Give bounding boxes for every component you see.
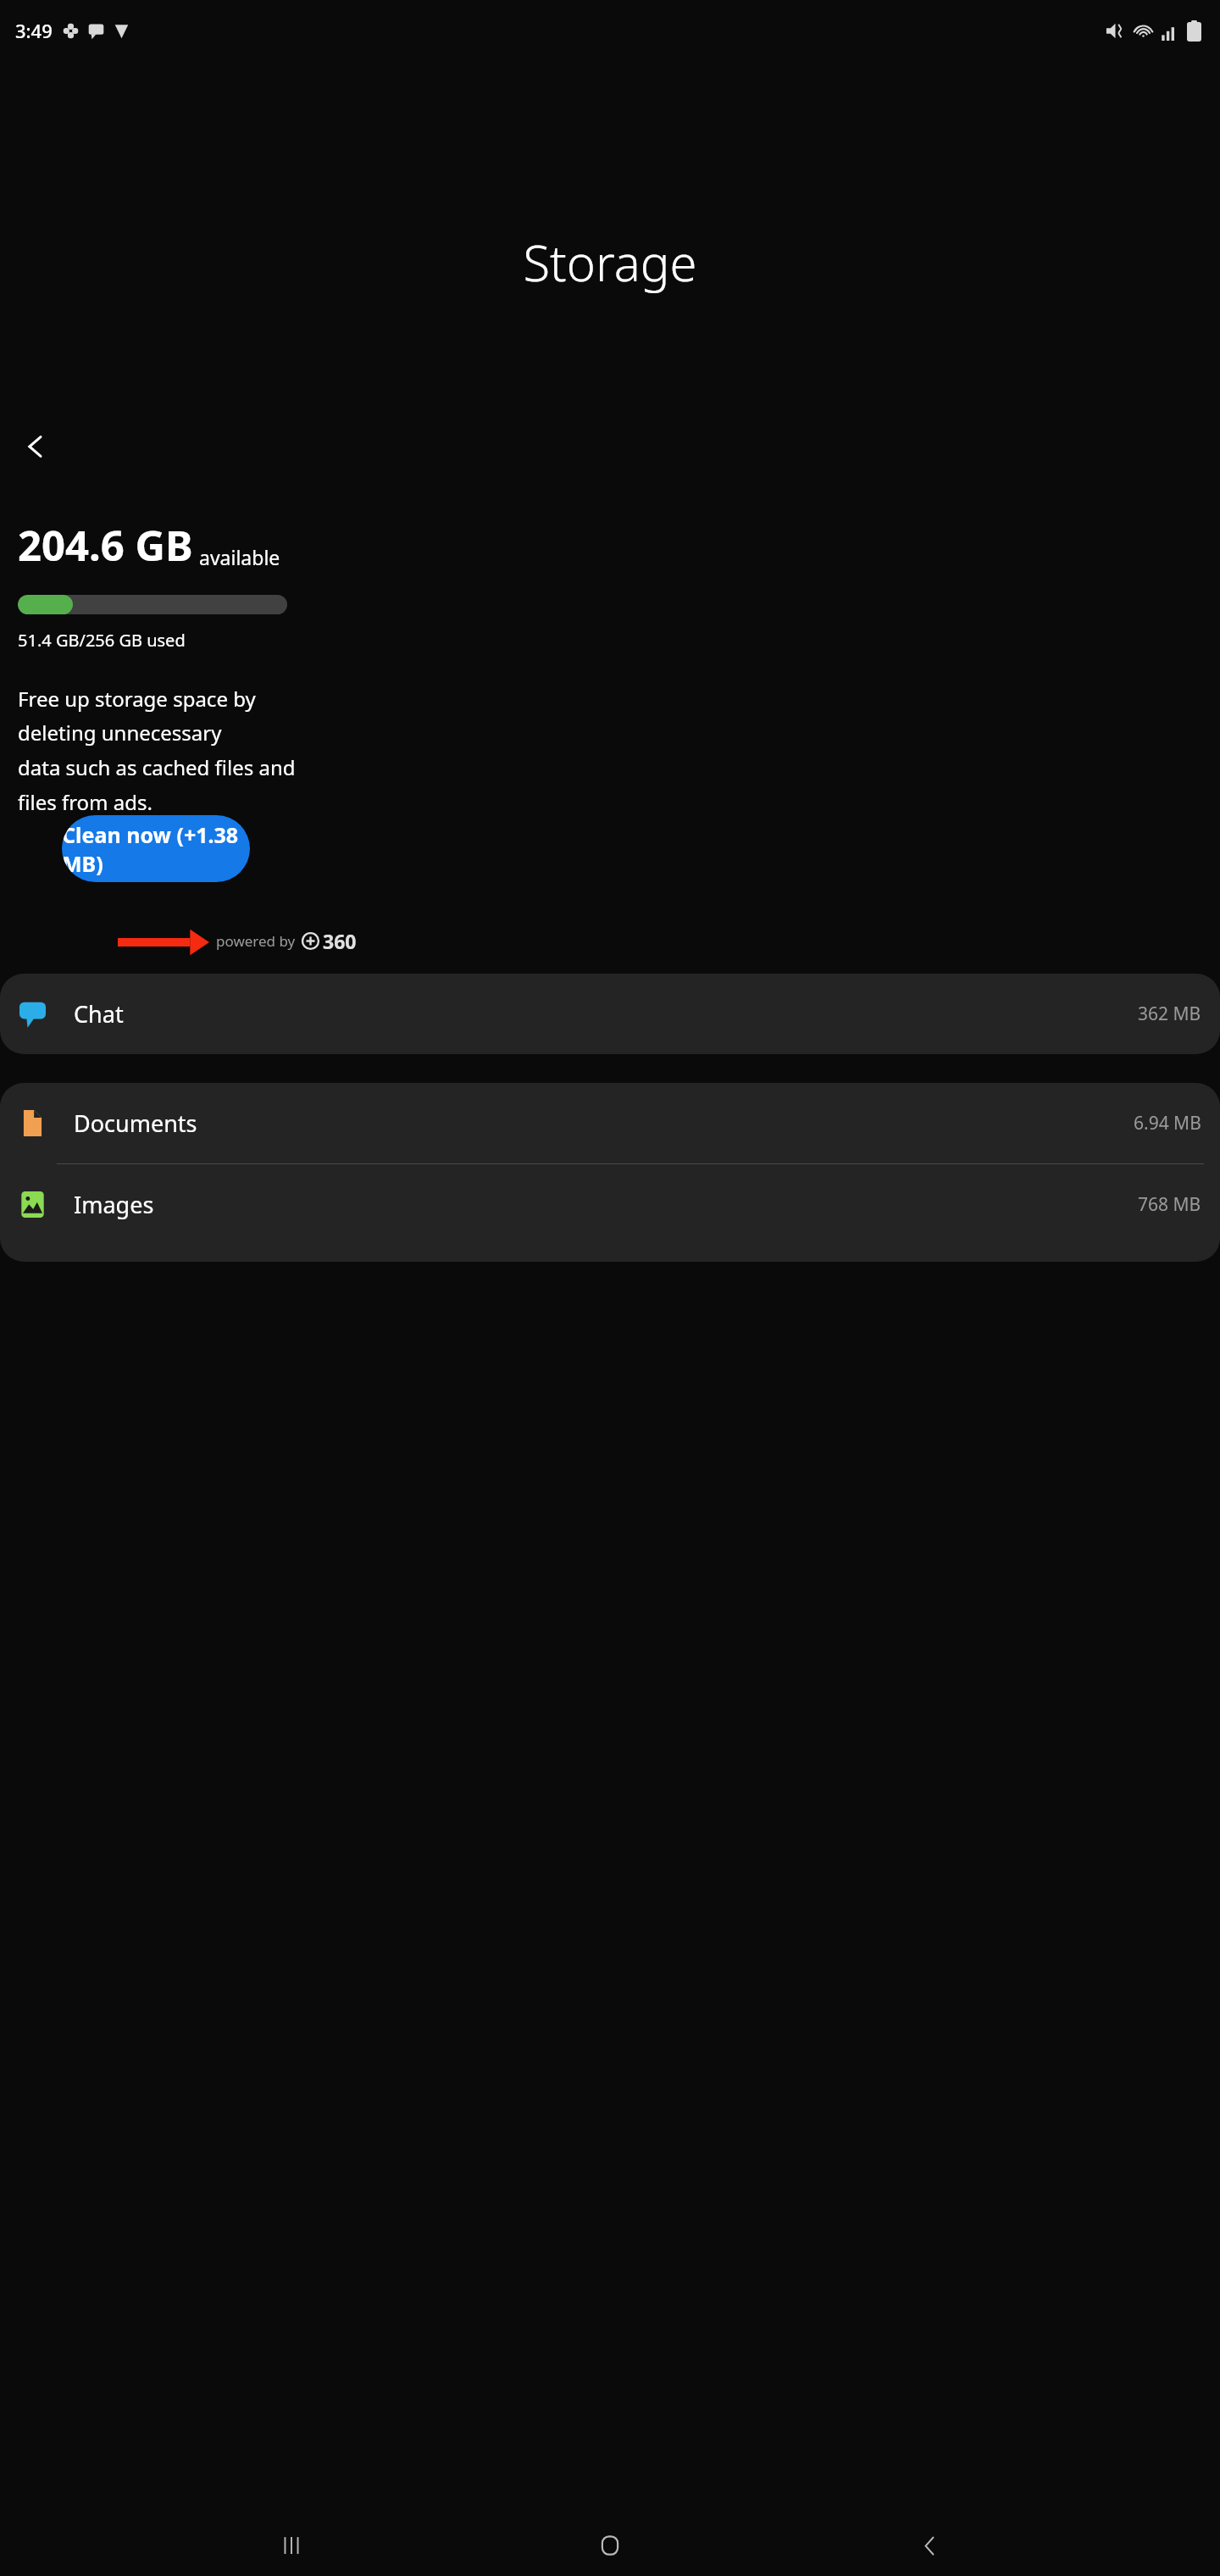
staticText: Documents: [74, 1108, 197, 1139]
staticText: 204.6 GB: [18, 517, 193, 574]
staticText: powered by: [216, 931, 296, 951]
staticText: 362 MB: [1138, 1002, 1201, 1026]
staticText: Clean now (+1.38 MB): [62, 820, 250, 878]
staticText: Storage: [0, 229, 1220, 296]
button[interactable]: Images: [0, 1164, 1220, 1245]
staticText: 6.94 MB: [1134, 1111, 1201, 1135]
button[interactable]: Clean now (+1.38 MB): [62, 815, 250, 882]
staticText: available: [199, 544, 280, 570]
staticText: Chat: [74, 998, 124, 1030]
button[interactable]: Home: [582, 2518, 638, 2573]
button[interactable]: Recent apps: [263, 2518, 319, 2573]
staticText: 51.4 GB/256 GB used: [18, 629, 186, 652]
button[interactable]: Back: [11, 422, 60, 471]
staticText: 360: [323, 928, 357, 954]
staticText: Free up storage space by deleting unnece…: [18, 685, 302, 816]
staticText: 3:49: [15, 18, 53, 43]
button[interactable]: Chat: [0, 974, 1220, 1054]
staticText: Images: [74, 1189, 154, 1220]
staticText: 768 MB: [1138, 1192, 1201, 1217]
button[interactable]: Documents: [0, 1083, 1220, 1163]
button[interactable]: Back: [901, 2518, 957, 2573]
